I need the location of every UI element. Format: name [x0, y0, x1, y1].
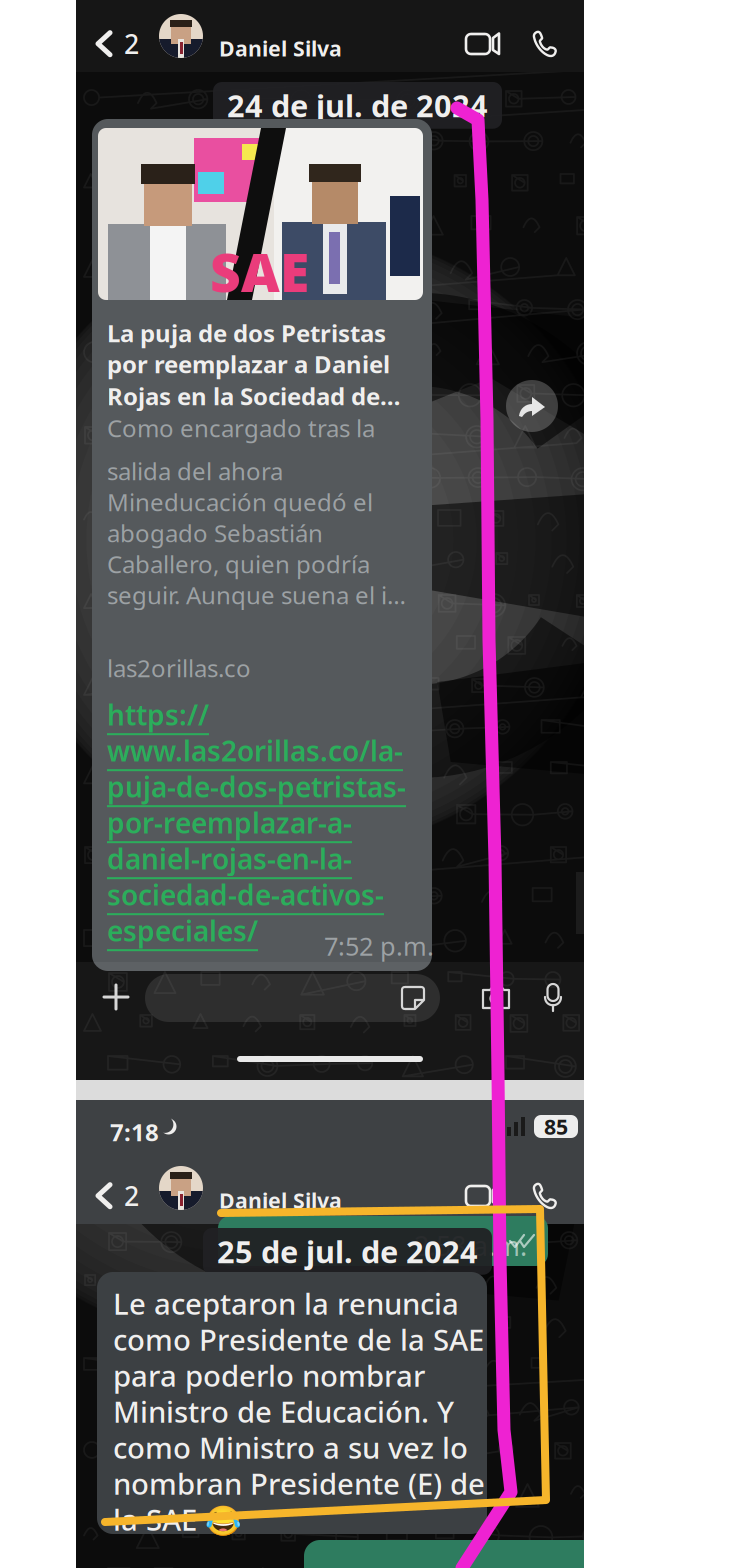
staticText: puja-de-dos-petristas-: [107, 768, 406, 805]
staticText: 25 de jul. de 2024: [217, 1231, 478, 1272]
staticText: nombran Presidente (E) de: [113, 1464, 485, 1503]
staticText: 85: [544, 1112, 568, 1141]
button[interactable]: Forward: [506, 380, 558, 432]
button[interactable]: www.las2orillas.co/la-: [107, 732, 403, 771]
button[interactable]: Daniel Silva: [213, 24, 348, 72]
staticText: 2: [124, 1178, 139, 1213]
staticText: 2:58 a.m.: [414, 1228, 527, 1263]
staticText: salida del ahora: [107, 455, 283, 487]
staticText: sociedad-de-activos-: [107, 876, 384, 913]
staticText: para poderlo nombrar: [113, 1356, 425, 1395]
staticText: 7:18: [110, 1116, 159, 1148]
staticText: 24 de jul. de 2024: [227, 85, 488, 126]
staticText: como Presidente de la SAE: [113, 1320, 484, 1359]
button[interactable]: Back, 2 unread: [84, 1168, 149, 1223]
staticText: 2:59 a.m.: [387, 1538, 508, 1568]
staticText: como Ministro a su vez lo: [113, 1428, 468, 1467]
button[interactable]: por-reemplazar-a-: [107, 804, 352, 843]
staticText: seguir. Aunque suena el i…: [107, 579, 406, 611]
button[interactable]: [145, 974, 440, 1022]
staticText: abogado Sebastián: [107, 517, 323, 549]
button[interactable]: especiales/: [107, 912, 258, 951]
staticText: SAE: [210, 236, 309, 307]
button[interactable]: Contact photo: [159, 14, 203, 58]
staticText: La puja de dos Petristas: [107, 317, 386, 349]
staticText: https://: [107, 696, 209, 733]
button[interactable]: Attach: [89, 970, 143, 1024]
staticText: Daniel Silva: [219, 34, 342, 62]
button[interactable]: Video call: [454, 19, 512, 69]
button[interactable]: Record voice message: [531, 971, 575, 1024]
staticText: Rojas en la Sociedad de…: [107, 380, 401, 412]
staticText: Daniel Silva: [219, 1186, 342, 1214]
staticText: especiales/: [107, 912, 258, 949]
staticText: Caballero, quien podría: [107, 548, 370, 580]
staticText: por reemplazar a Daniel: [107, 348, 390, 380]
button[interactable]: Voice call: [520, 17, 571, 70]
button[interactable]: puja-de-dos-petristas-: [107, 768, 406, 807]
button[interactable]: https://: [107, 696, 209, 735]
button[interactable]: daniel-rojas-en-la-: [107, 840, 352, 879]
staticText: daniel-rojas-en-la-: [107, 840, 352, 877]
button[interactable]: Video call: [454, 1171, 512, 1221]
button[interactable]: Contact photo: [159, 1166, 203, 1210]
staticText: 2: [124, 26, 139, 61]
staticText: Mineducación quedó el: [107, 486, 373, 518]
staticText: Ministro de Educación. Y: [113, 1392, 454, 1431]
staticText: las2orillas.co: [107, 652, 251, 684]
staticText: por-reemplazar-a-: [107, 804, 352, 841]
staticText: www.las2orillas.co/la-: [107, 732, 403, 769]
button[interactable]: Back, 2 unread: [84, 16, 149, 71]
button[interactable]: Voice call: [520, 1169, 571, 1222]
staticText: 7:52 p.m.: [324, 929, 434, 963]
staticText: la SAE 😂: [113, 1500, 242, 1539]
button[interactable]: Camera: [469, 973, 523, 1022]
button[interactable]: Scroll to bottom: [576, 872, 652, 934]
button[interactable]: Daniel Silva: [213, 1176, 348, 1224]
staticText: Le aceptaron la renuncia: [113, 1284, 459, 1323]
staticText: Como encargado tras la: [107, 412, 375, 444]
button[interactable]: sociedad-de-activos-: [107, 876, 384, 915]
